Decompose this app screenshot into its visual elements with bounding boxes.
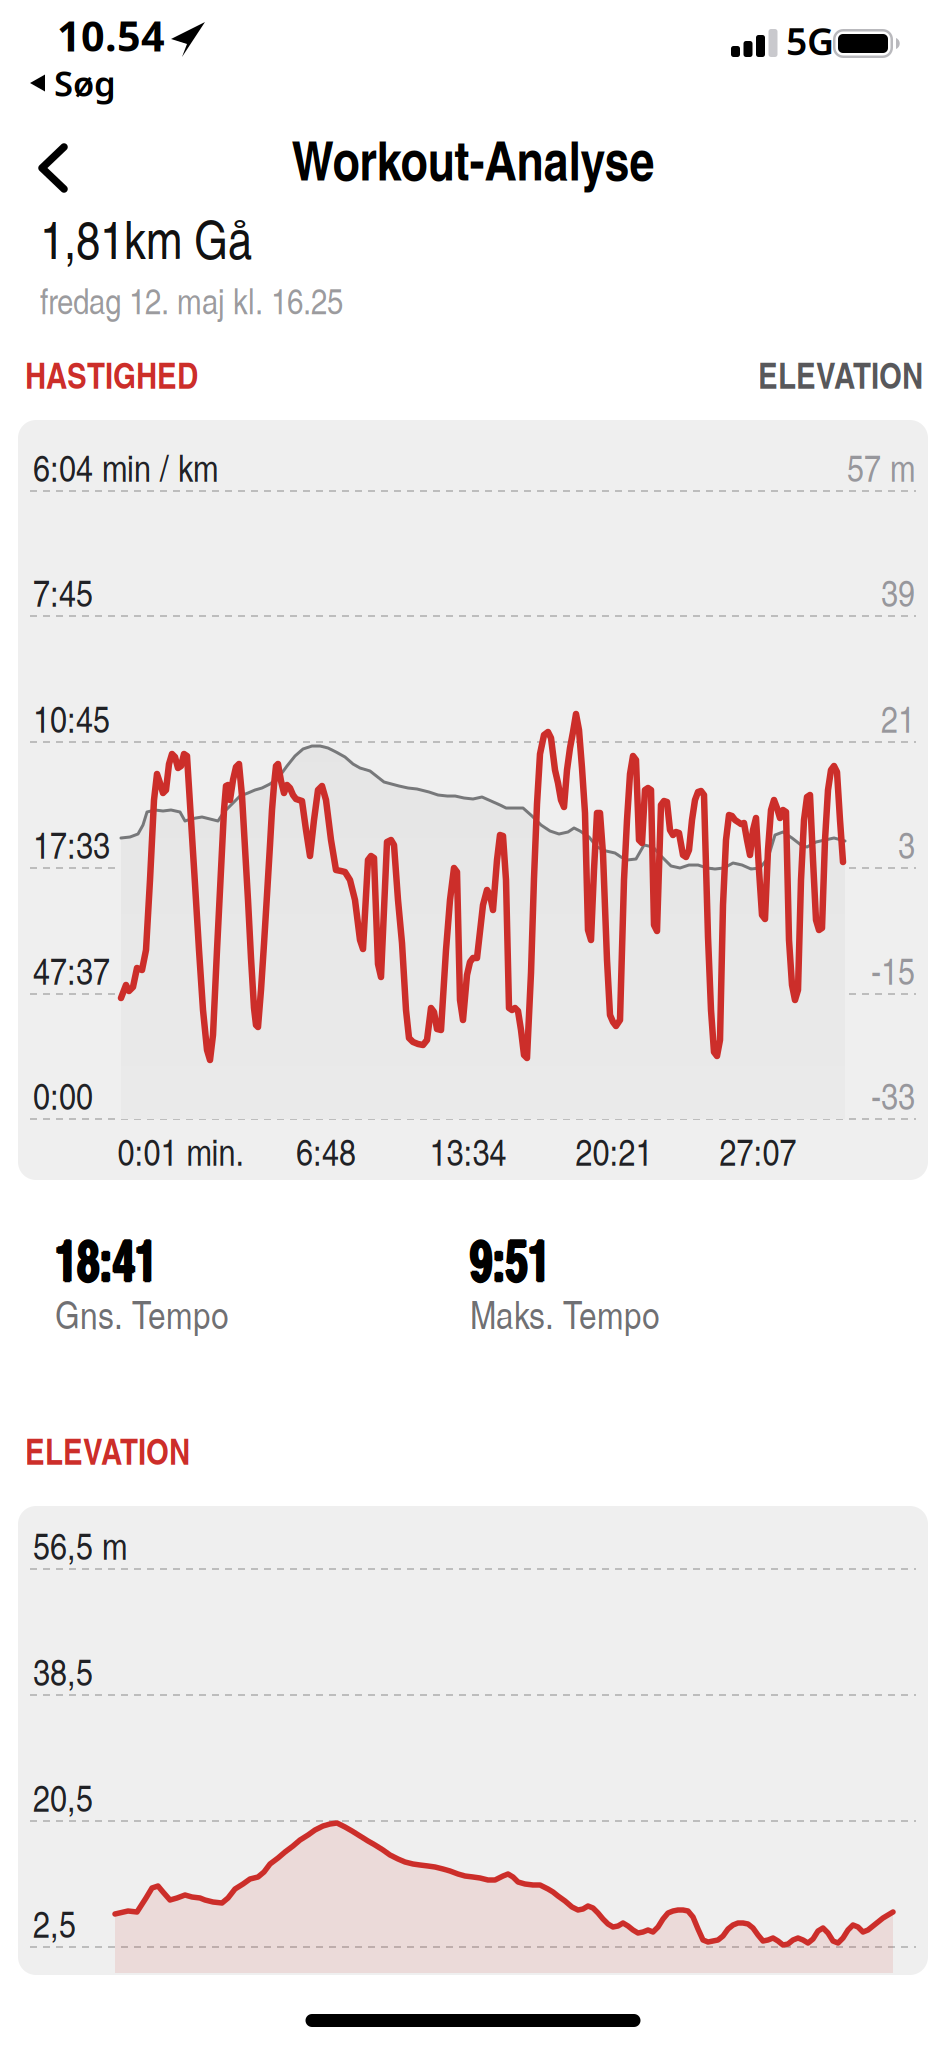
staticText: -15: [871, 944, 915, 995]
staticText: ELEVATION: [758, 349, 923, 400]
staticText: 18:41: [56, 1218, 176, 1299]
staticText: 17:33: [33, 818, 110, 869]
staticText: 6:48: [296, 1125, 356, 1176]
staticText: 18:41: [54, 1218, 174, 1299]
staticText: 9:51: [470, 1217, 564, 1298]
staticText: 20:21: [575, 1125, 652, 1176]
button[interactable]: Søg: [30, 60, 116, 106]
staticText: 9:51: [471, 1218, 565, 1299]
staticText: 9:51: [470, 1219, 564, 1300]
staticText: Søg: [54, 60, 116, 106]
staticText: 7:45: [33, 566, 93, 617]
staticText: 18:41: [55, 1219, 175, 1300]
staticText: Gns. Tempo: [55, 1287, 229, 1340]
staticText: 10.54: [57, 8, 165, 63]
staticText: 56,5 m: [33, 1519, 127, 1570]
staticText: HASTIGHED: [25, 349, 198, 400]
staticText: 0:00: [33, 1069, 93, 1120]
staticText: 0:01 min.: [117, 1125, 244, 1176]
staticText: Workout-Analyse: [291, 120, 654, 197]
staticText: 39: [881, 566, 915, 617]
staticText: 18:41: [55, 1217, 175, 1298]
staticText: 9:51: [470, 1218, 564, 1299]
staticText: 1,81km Gå: [40, 201, 252, 274]
button[interactable]: HASTIGHED: [25, 349, 198, 400]
staticText: 5G: [786, 16, 834, 66]
staticText: 20,5: [33, 1771, 93, 1822]
staticText: fredag 12. maj kl. 16.25: [40, 275, 343, 324]
staticText: -33: [871, 1069, 915, 1120]
staticText: 18:41: [55, 1218, 175, 1299]
staticText: 47:37: [33, 944, 110, 995]
staticText: 38,5: [33, 1645, 93, 1696]
staticText: 10:45: [33, 692, 110, 743]
staticText: 6:04 min / km: [33, 441, 218, 492]
staticText: Maks. Tempo: [470, 1287, 660, 1340]
staticText: ELEVATION: [25, 1425, 190, 1476]
button[interactable]: Back: [38, 144, 68, 192]
staticText: 2,5: [33, 1897, 76, 1948]
staticText: 21: [881, 692, 915, 743]
staticText: 27:07: [719, 1125, 796, 1176]
button[interactable]: ELEVATION: [703, 349, 923, 400]
staticText: 3: [898, 818, 915, 869]
staticText: 13:34: [429, 1125, 506, 1176]
staticText: 57 m: [847, 441, 915, 492]
staticText: 9:51: [469, 1218, 563, 1299]
